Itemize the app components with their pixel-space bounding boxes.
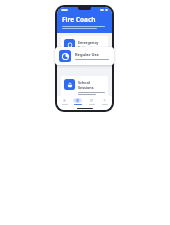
button[interactable]: Emergency Exit <box>61 36 108 59</box>
staticText: Regular Use <box>75 52 99 57</box>
button[interactable]: Home <box>58 98 71 105</box>
staticText: School Sessions <box>78 80 105 90</box>
button[interactable]: Regular Use <box>55 47 114 65</box>
staticText: Emergency Exit <box>78 40 105 50</box>
button[interactable]: Library <box>85 98 98 105</box>
button[interactable]: Profile <box>98 98 111 105</box>
staticText: Fire Coach <box>62 15 96 24</box>
button[interactable]: School Sessions <box>61 76 108 99</box>
button[interactable]: Sessions <box>71 98 84 105</box>
